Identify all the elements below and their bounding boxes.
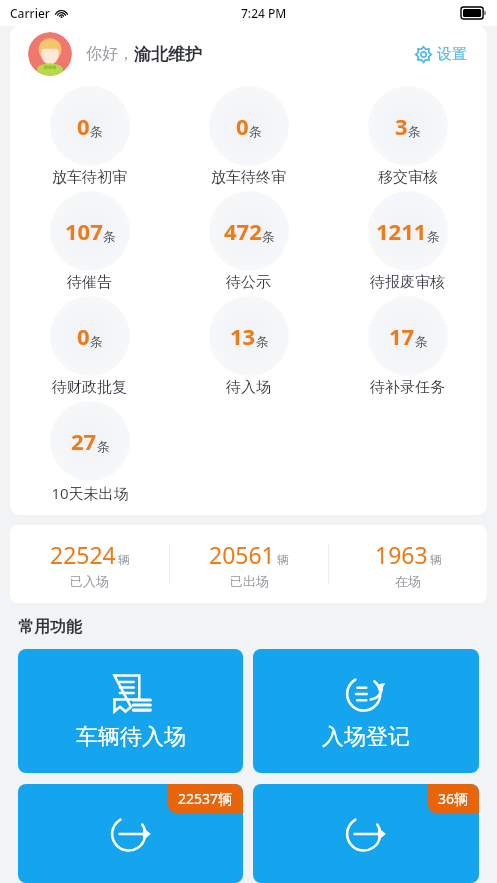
staticText: 已入场	[70, 573, 109, 589]
staticText: 0	[77, 321, 90, 351]
staticText: 472	[224, 216, 262, 246]
staticText: 放车待终审	[211, 168, 286, 187]
button[interactable]: 3	[328, 86, 487, 187]
staticText: 入场登记	[322, 723, 410, 751]
staticText: 条	[90, 333, 103, 349]
button[interactable]: 0	[10, 296, 169, 397]
staticText: 辆	[118, 552, 130, 567]
button[interactable]: 17	[328, 296, 487, 397]
staticText: 条	[249, 123, 262, 139]
staticText: 待催告	[67, 273, 112, 292]
staticText: 7:24 PM	[241, 5, 287, 21]
staticText: 待财政批复	[52, 378, 127, 397]
staticText: 22537辆	[178, 789, 233, 808]
other: 设置	[415, 46, 432, 63]
staticText: 0	[236, 111, 249, 141]
staticText: 已出场	[230, 573, 269, 589]
staticText: 辆	[430, 552, 442, 567]
staticText: 36辆	[438, 789, 469, 808]
staticText: 待入场	[226, 378, 271, 397]
staticText: 条	[103, 228, 116, 244]
button[interactable]: 20561	[170, 539, 328, 589]
staticText: 10天未出场	[51, 483, 129, 503]
staticText: 13	[230, 321, 256, 351]
staticText: 常用功能	[18, 617, 82, 637]
button[interactable]: 22537辆	[18, 784, 243, 883]
staticText: 条	[97, 438, 110, 454]
button[interactable]: 0	[169, 86, 328, 187]
staticText: 条	[90, 123, 103, 139]
staticText: 1963	[375, 539, 428, 570]
button[interactable]: 27	[10, 401, 169, 503]
button[interactable]: 22524	[10, 539, 169, 589]
staticText: 辆	[277, 552, 289, 567]
staticText: 待公示	[226, 273, 271, 292]
staticText: 移交审核	[378, 168, 438, 187]
staticText: 条	[408, 123, 421, 139]
staticText: 放车待初审	[52, 168, 127, 187]
button[interactable]: 1963	[329, 539, 487, 589]
button[interactable]: 0	[10, 86, 169, 187]
button[interactable]: 设置	[411, 41, 471, 68]
button[interactable]: 1211	[328, 191, 487, 292]
button[interactable]: 107	[10, 191, 169, 292]
staticText: 待补录任务	[370, 378, 445, 397]
staticText: 待报废审核	[370, 273, 445, 292]
staticText: 条	[256, 333, 269, 349]
button[interactable]: 472	[169, 191, 328, 292]
button[interactable]: 36辆	[253, 784, 479, 883]
button[interactable]: 入场登记	[253, 649, 479, 773]
staticText: 条	[262, 228, 275, 244]
staticText: 27	[71, 426, 97, 456]
button[interactable]: 车辆待入场	[18, 649, 243, 773]
staticText: 20561	[209, 539, 275, 570]
staticText: 条	[415, 333, 428, 349]
staticText: 渝北维护	[134, 44, 202, 65]
button[interactable]: 13	[169, 296, 328, 397]
staticText: 你好，	[86, 44, 134, 64]
staticText: 17	[389, 321, 415, 351]
staticText: 车辆待入场	[76, 723, 186, 751]
staticText: 107	[65, 216, 103, 246]
staticText: Carrier	[10, 5, 50, 21]
staticText: 3	[395, 111, 408, 141]
staticText: 在场	[395, 573, 421, 589]
staticText: 0	[77, 111, 90, 141]
staticText: 1211	[376, 216, 427, 246]
staticText: 22524	[50, 539, 116, 570]
staticText: 设置	[437, 45, 467, 64]
staticText: 条	[427, 228, 440, 244]
